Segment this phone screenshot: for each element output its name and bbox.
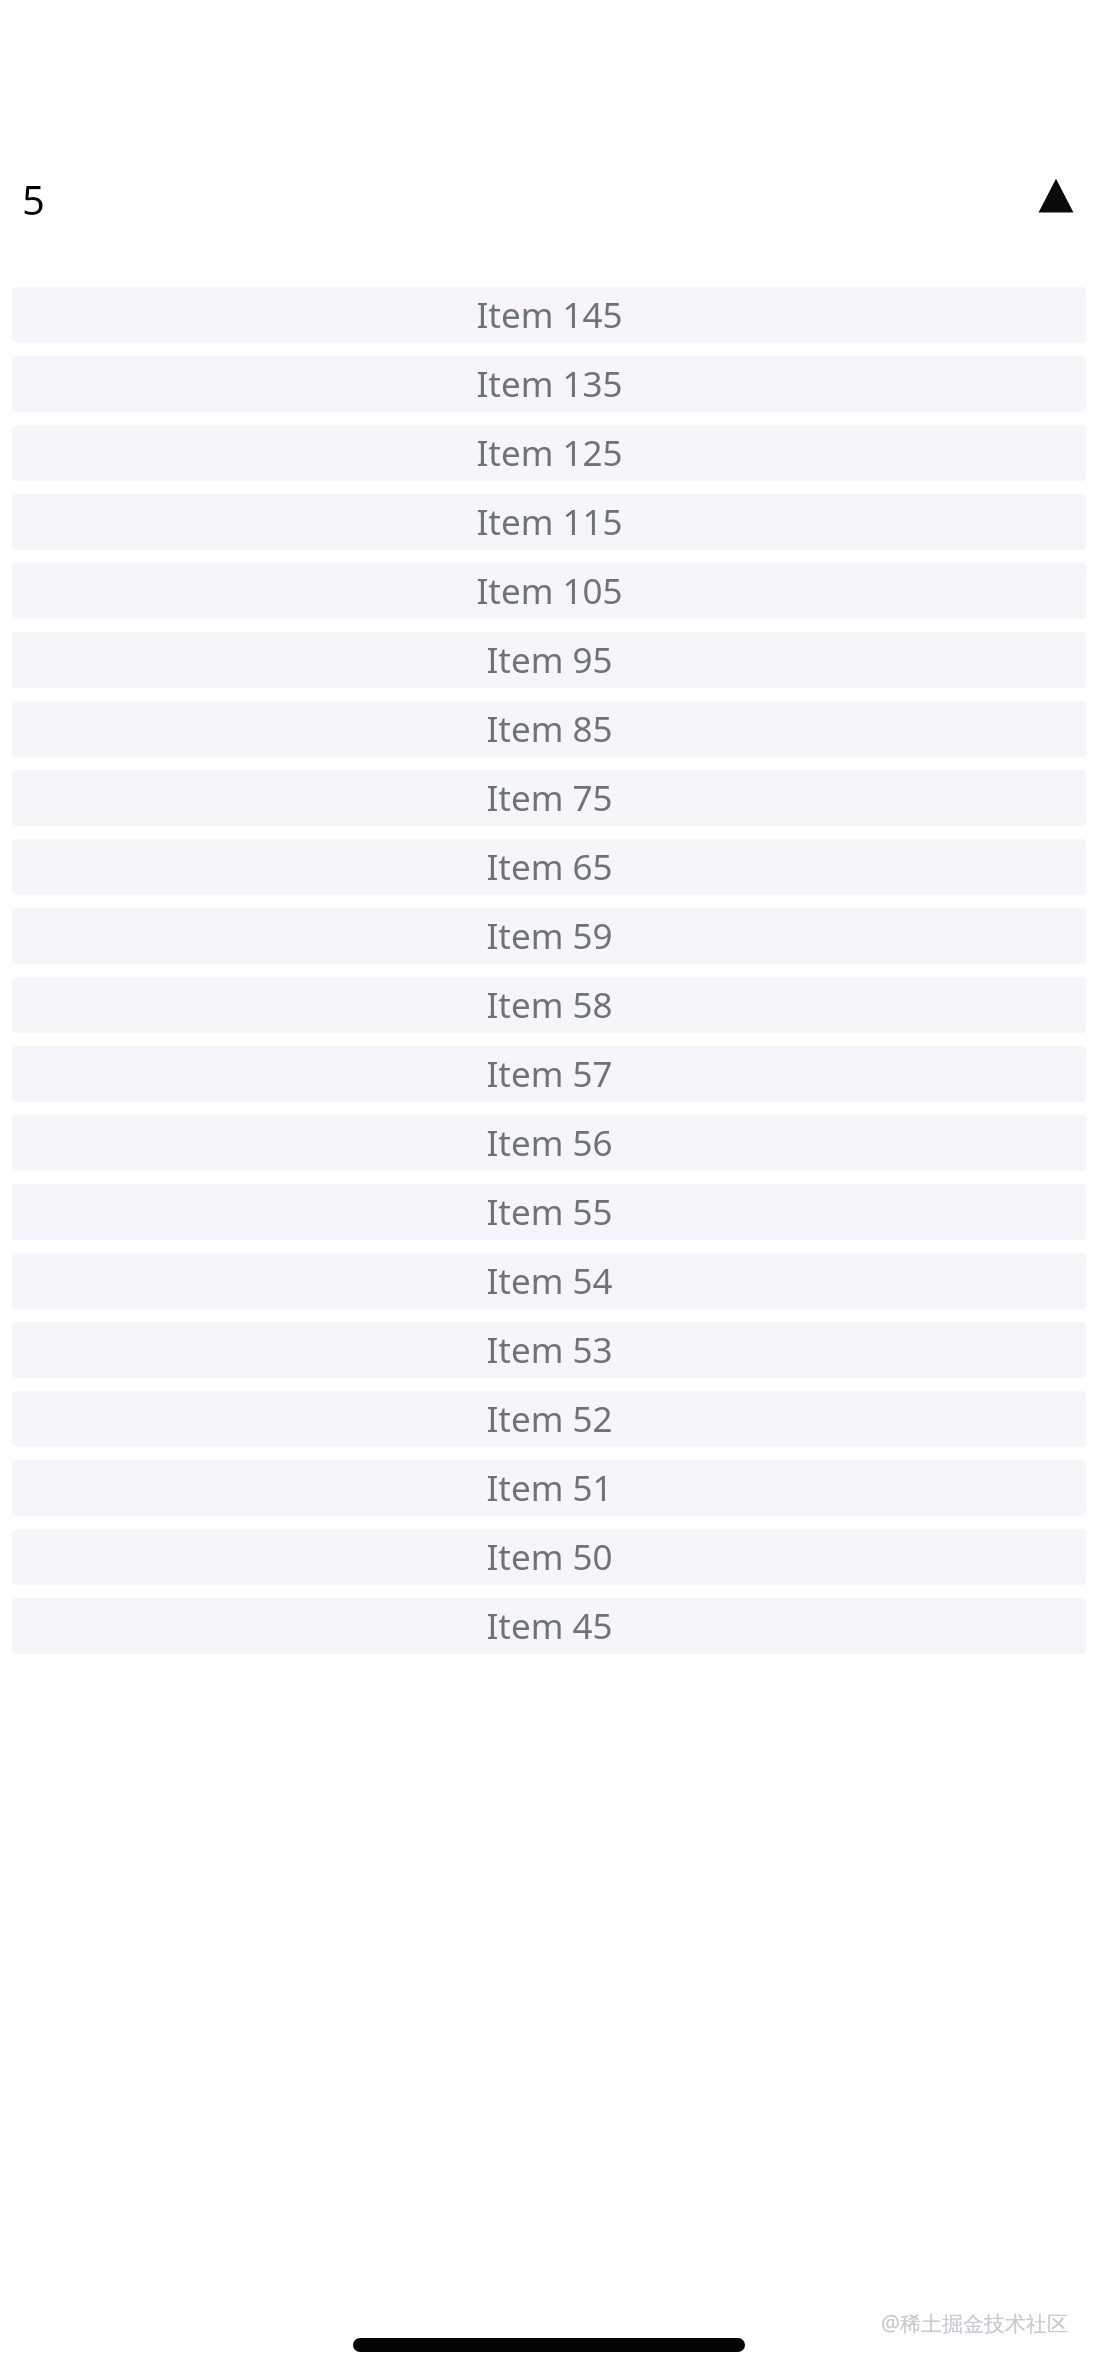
button[interactable]: Item 85 — [12, 701, 1086, 757]
staticText: @稀土掘金技术社区 — [881, 2309, 1068, 2338]
staticText: Item 54 — [486, 1257, 613, 1305]
staticText: Item 53 — [486, 1326, 613, 1374]
button[interactable]: Item 105 — [12, 563, 1086, 619]
staticText: Item 95 — [486, 636, 613, 684]
staticText: Item 145 — [476, 291, 623, 339]
button[interactable]: Item 65 — [12, 839, 1086, 895]
button[interactable]: Item 51 — [12, 1460, 1086, 1516]
button[interactable]: Item 56 — [12, 1115, 1086, 1171]
button[interactable]: Item 59 — [12, 908, 1086, 964]
staticText: Item 51 — [486, 1464, 613, 1512]
button[interactable]: Item 54 — [12, 1253, 1086, 1309]
button[interactable]: Item 55 — [12, 1184, 1086, 1240]
button[interactable]: Item 50 — [12, 1529, 1086, 1585]
button[interactable]: Item 125 — [12, 425, 1086, 481]
button[interactable]: Item 53 — [12, 1322, 1086, 1378]
staticText: Item 135 — [476, 360, 623, 408]
button[interactable]: Item 52 — [12, 1391, 1086, 1447]
staticText: Item 65 — [486, 843, 613, 891]
staticText: Item 45 — [486, 1602, 613, 1650]
staticText: Item 57 — [486, 1050, 613, 1098]
button[interactable]: Item 45 — [12, 1598, 1086, 1654]
staticText: Item 75 — [486, 774, 613, 822]
button[interactable]: Scroll to top — [1032, 172, 1080, 220]
staticText: Item 52 — [486, 1395, 613, 1443]
button[interactable]: Item 57 — [12, 1046, 1086, 1102]
staticText: Item 55 — [486, 1188, 613, 1236]
button[interactable]: Item 95 — [12, 632, 1086, 688]
staticText: Item 58 — [486, 981, 613, 1029]
staticText: Item 50 — [486, 1533, 613, 1581]
button[interactable]: Item 145 — [12, 287, 1086, 343]
staticText: Item 85 — [486, 705, 613, 753]
button[interactable]: 5 — [12, 168, 55, 230]
staticText: Item 105 — [476, 567, 623, 615]
staticText: 5 — [22, 172, 45, 226]
button[interactable]: Item 115 — [12, 494, 1086, 550]
staticText: Item 59 — [486, 912, 613, 960]
staticText: Item 125 — [476, 429, 623, 477]
button[interactable]: Item 135 — [12, 356, 1086, 412]
button[interactable]: Item 75 — [12, 770, 1086, 826]
staticText: Item 56 — [486, 1119, 613, 1167]
staticText: Item 115 — [476, 498, 623, 546]
button[interactable]: Item 58 — [12, 977, 1086, 1033]
